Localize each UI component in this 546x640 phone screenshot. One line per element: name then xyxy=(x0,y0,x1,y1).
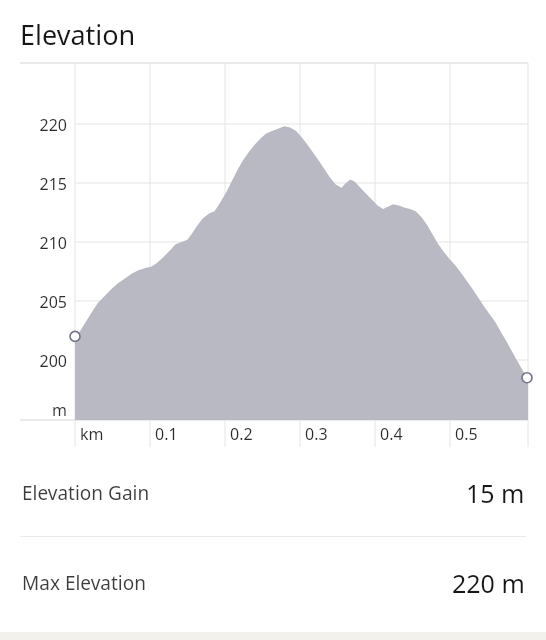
staticText: 215 xyxy=(30,173,67,195)
staticText: 0.2 xyxy=(230,423,253,445)
staticText: 205 xyxy=(30,291,67,313)
button[interactable]: Elevation Gain xyxy=(0,470,546,515)
staticText: 15 m xyxy=(466,476,525,510)
staticText: 0.5 xyxy=(455,423,478,445)
staticText: Elevation xyxy=(20,16,136,53)
staticText: Max Elevation xyxy=(22,570,146,596)
staticText: 200 xyxy=(30,350,67,372)
staticText: 0.4 xyxy=(380,423,403,445)
staticText: 220 m xyxy=(452,566,525,600)
staticText: 0.3 xyxy=(305,423,328,445)
staticText: km xyxy=(80,423,104,445)
staticText: 220 xyxy=(30,114,67,136)
button[interactable]: Max Elevation xyxy=(0,560,546,605)
staticText: 0.1 xyxy=(155,423,178,445)
staticText: m xyxy=(30,399,67,421)
staticText: 210 xyxy=(30,232,67,254)
staticText: Elevation Gain xyxy=(22,480,150,506)
